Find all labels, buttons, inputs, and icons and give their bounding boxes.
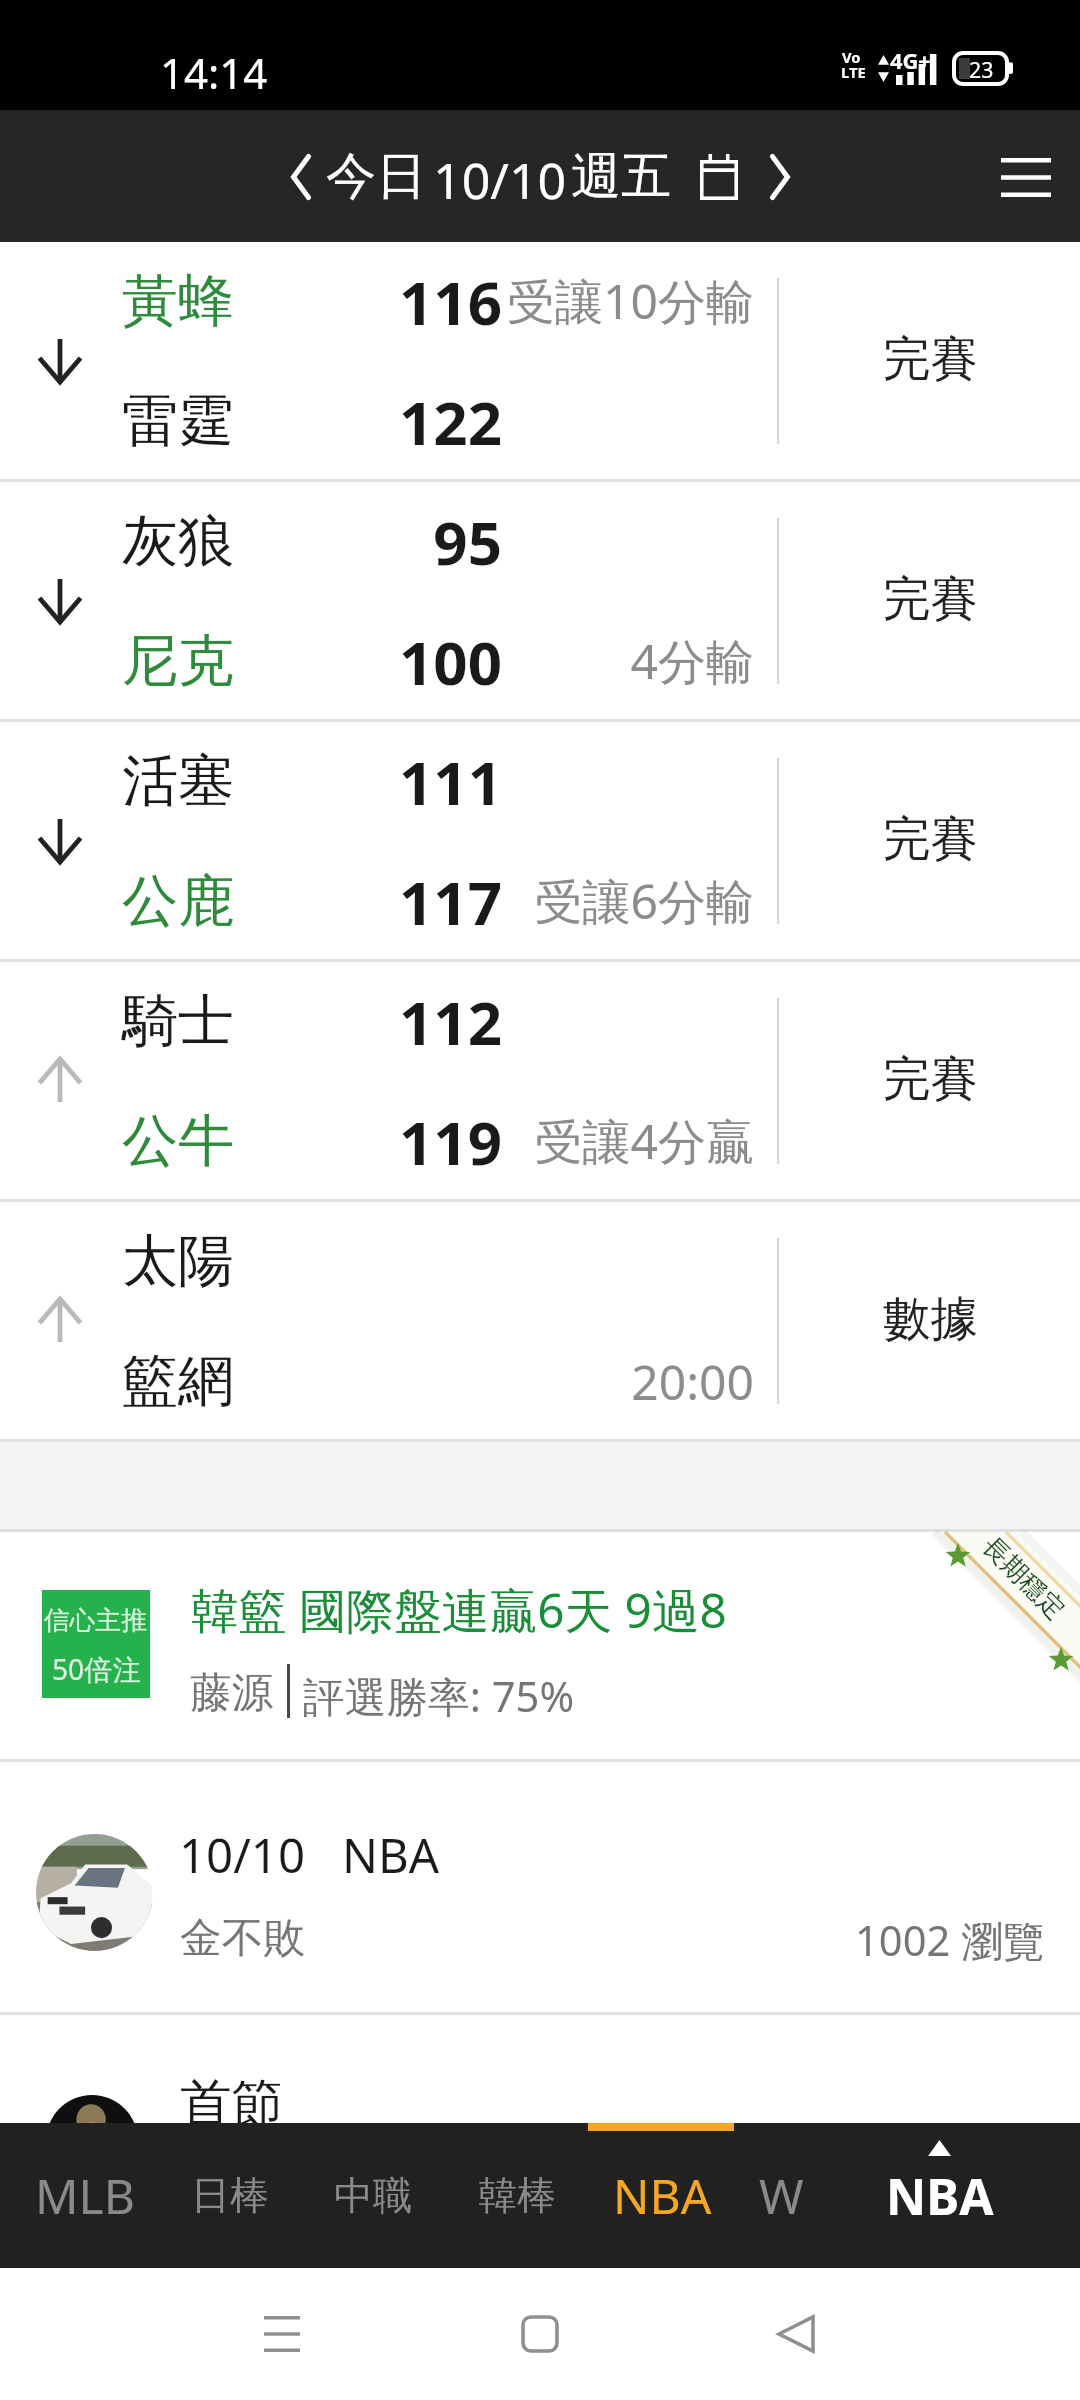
button[interactable]: 活塞 xyxy=(0,722,1080,959)
staticText: 活塞 xyxy=(122,746,235,817)
staticText: 籃網 xyxy=(122,1346,235,1417)
staticText: 100 xyxy=(302,621,502,701)
staticText: NBA xyxy=(613,2163,712,2228)
staticText: 騎士 xyxy=(122,986,235,1057)
staticText xyxy=(390,389,754,454)
staticText: 今日 xyxy=(326,145,427,208)
button[interactable]: 10/10 NBA xyxy=(0,1762,1080,2012)
staticText: 50倍注 xyxy=(52,1650,141,1689)
staticText: 111 xyxy=(302,741,502,821)
staticText: LTE xyxy=(841,62,866,82)
staticText: 117 xyxy=(302,861,502,941)
button[interactable]: Next day xyxy=(770,154,790,200)
staticText: 112 xyxy=(302,981,502,1061)
staticText: 4G+ xyxy=(890,46,931,76)
staticText: 10/10 NBA xyxy=(179,1822,440,1887)
button[interactable]: 今日 xyxy=(320,140,672,212)
staticText xyxy=(390,509,754,574)
staticText: Vo xyxy=(842,47,861,67)
button[interactable]: W xyxy=(715,2123,847,2268)
button[interactable]: 日棒 xyxy=(164,2123,296,2268)
button[interactable]: NBA xyxy=(874,2123,1006,2268)
button[interactable]: Recent apps xyxy=(222,2274,342,2394)
button[interactable]: Previous day xyxy=(291,154,311,200)
button[interactable]: Pick date xyxy=(700,154,738,200)
staticText: 週五 xyxy=(571,145,672,208)
staticText: 公牛 xyxy=(122,1106,235,1177)
button[interactable]: Home xyxy=(480,2274,600,2394)
staticText: 23 xyxy=(969,55,994,84)
staticText: 116 xyxy=(302,261,502,341)
staticText xyxy=(390,749,754,814)
button[interactable]: 灰狼 xyxy=(0,482,1080,719)
button[interactable]: 騎士 xyxy=(0,962,1080,1199)
staticText: 日棒 xyxy=(191,2171,269,2220)
staticText: 完賽 xyxy=(883,329,978,389)
staticText: 122 xyxy=(302,381,502,461)
staticText: 首節 xyxy=(180,2071,284,2136)
staticText: 受讓10分輸 xyxy=(390,268,754,334)
staticText: 受讓4分贏 xyxy=(390,1108,754,1174)
staticText: 受讓6分輸 xyxy=(390,868,754,934)
button[interactable]: 韓棒 xyxy=(451,2123,583,2268)
staticText: 14:14 xyxy=(160,44,268,101)
staticText: 太陽 xyxy=(122,1226,235,1297)
staticText: 中職 xyxy=(334,2171,412,2220)
button[interactable]: 黃蜂 xyxy=(0,242,1080,479)
staticText: 長期穩定 xyxy=(976,1530,1072,1627)
staticText: 完賽 xyxy=(883,569,978,629)
staticText: 黃蜂 xyxy=(122,266,235,337)
staticText: 評選勝率: 75% xyxy=(303,1667,575,1724)
button[interactable]: MLB xyxy=(19,2123,151,2268)
staticText: 完賽 xyxy=(883,1049,978,1109)
staticText: MLB xyxy=(35,2163,135,2228)
staticText: 尼克 xyxy=(122,626,235,697)
staticText: 數據 xyxy=(883,1289,978,1349)
staticText: 金不敗 xyxy=(180,1912,306,1965)
staticText: 韓籃 國際盤連贏6天 9過8 xyxy=(191,1577,727,1642)
button[interactable]: Menu xyxy=(981,132,1071,222)
staticText xyxy=(390,989,754,1054)
staticText: W xyxy=(759,2163,804,2228)
staticText: 藤源 xyxy=(190,1667,274,1720)
staticText: 雷霆 xyxy=(122,386,235,457)
staticText: 95 xyxy=(302,501,502,581)
button[interactable]: Back xyxy=(738,2274,858,2394)
button[interactable]: 太陽 xyxy=(0,1202,1080,1439)
staticText: 灰狼 xyxy=(122,506,235,577)
staticText: 20:00 xyxy=(390,1349,754,1414)
staticText: 1002 瀏覽 xyxy=(855,1911,1045,1968)
button[interactable]: NBA xyxy=(596,2123,728,2268)
staticText: 完賽 xyxy=(883,809,978,869)
staticText: 10/10 xyxy=(433,145,567,213)
button[interactable]: 中職 xyxy=(307,2123,439,2268)
staticText: 韓棒 xyxy=(478,2171,556,2220)
button[interactable]: 信心主推 xyxy=(0,1532,1080,1759)
staticText: 公鹿 xyxy=(122,866,235,937)
staticText: NBA xyxy=(886,2162,994,2229)
staticText: 119 xyxy=(302,1101,502,1181)
button[interactable]: 首節 xyxy=(0,2015,1080,2122)
staticText: 信心主推 xyxy=(44,1604,148,1637)
staticText: 4分輸 xyxy=(390,628,754,694)
